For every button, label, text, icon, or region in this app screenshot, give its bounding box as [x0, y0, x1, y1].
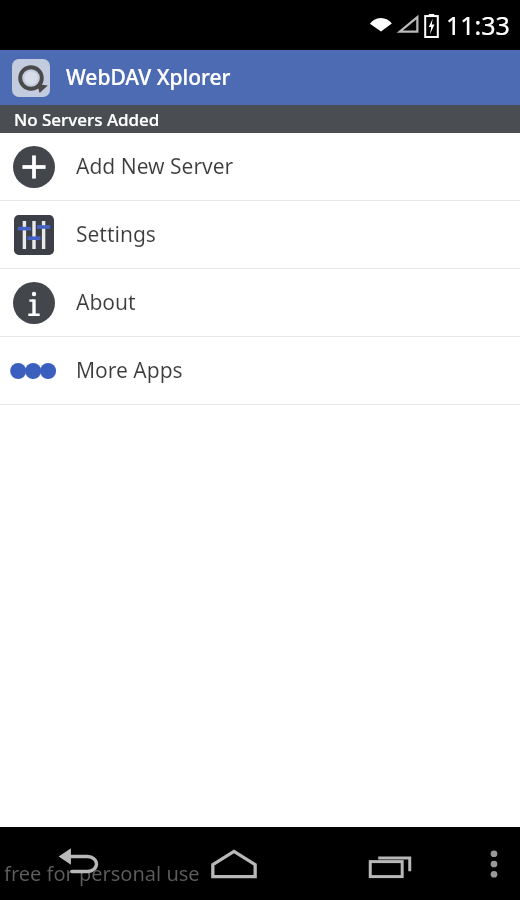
staticText: No Servers Added — [14, 108, 160, 131]
button[interactable]: About — [0, 269, 520, 336]
staticText: 11:33 — [446, 8, 510, 42]
button[interactable]: More Apps — [0, 337, 520, 404]
staticText: More Apps — [76, 356, 183, 385]
button[interactable]: Add New Server — [0, 133, 520, 200]
staticText: Settings — [76, 220, 156, 249]
button[interactable]: More options — [468, 827, 520, 900]
button[interactable]: Back — [0, 827, 156, 900]
staticText: WebDAV Xplorer — [66, 63, 231, 92]
staticText: About — [76, 288, 136, 317]
other: App icon — [12, 59, 50, 97]
button[interactable]: Recent apps — [312, 827, 468, 900]
button[interactable]: Settings — [0, 201, 520, 268]
staticText: free for personal use — [4, 860, 200, 887]
button[interactable]: Home — [156, 827, 312, 900]
staticText: Add New Server — [76, 152, 234, 181]
